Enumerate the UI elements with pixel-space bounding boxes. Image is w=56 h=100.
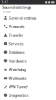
staticText: Diagnostics [8,93,28,98]
button[interactable]: Database [0,48,56,57]
button[interactable]: Webhooks [0,74,56,82]
staticText: Watchdog [8,67,25,72]
staticText: Services [8,41,23,46]
button[interactable]: Hardware [0,57,56,65]
button[interactable]: Diagnostics [0,91,56,100]
staticText: SYSTEM [2,10,10,13]
button[interactable]: Protocols [0,22,56,31]
button[interactable]: Services [0,39,56,48]
staticText: Hardware [8,58,26,63]
button[interactable]: Watchdog [0,65,56,74]
staticText: General settings [8,15,36,20]
staticText: Sound settings [2,5,31,10]
button[interactable]: VPN Tunnel [0,82,56,91]
staticText: Protocols [8,24,24,29]
button[interactable]: General settings [0,14,56,22]
staticText: Transfer [8,32,23,38]
staticText: Webhooks [8,75,26,81]
staticText: 9:41 [2,0,9,4]
button[interactable]: Transfer [0,31,56,39]
staticText: VPN Tunnel [8,84,27,89]
staticText: Database [8,50,24,55]
